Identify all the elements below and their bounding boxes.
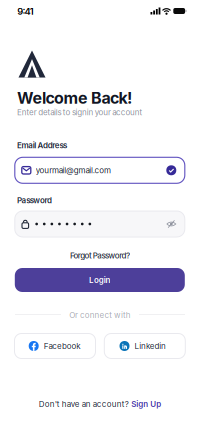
button[interactable]: Don't have an account? [39,399,161,409]
staticText: Facebook [44,341,80,351]
button[interactable]: yourmail@gmail.com [15,157,185,183]
button[interactable]: Facebook [14,333,95,358]
button[interactable]: Password [15,211,185,237]
staticText: Forgot Password? [70,251,130,260]
staticText: Sign Up [131,399,161,409]
staticText: Or connect with [69,310,131,320]
staticText: Login [89,275,110,285]
staticText: yourmail@gmail.com [36,166,111,175]
staticText: Don't have an account? [39,399,129,409]
button[interactable]: Login [15,268,185,292]
staticText: Enter details to signin your account [17,108,142,117]
staticText: Linkedin [134,341,166,351]
staticText: Password [17,196,52,205]
button[interactable]: Forgot Password? [70,251,130,260]
staticText: Email Address [17,141,67,150]
staticText: 9:41 [17,6,34,17]
staticText: Welcome Back! [17,89,132,107]
button[interactable]: Linkedin [104,333,185,358]
